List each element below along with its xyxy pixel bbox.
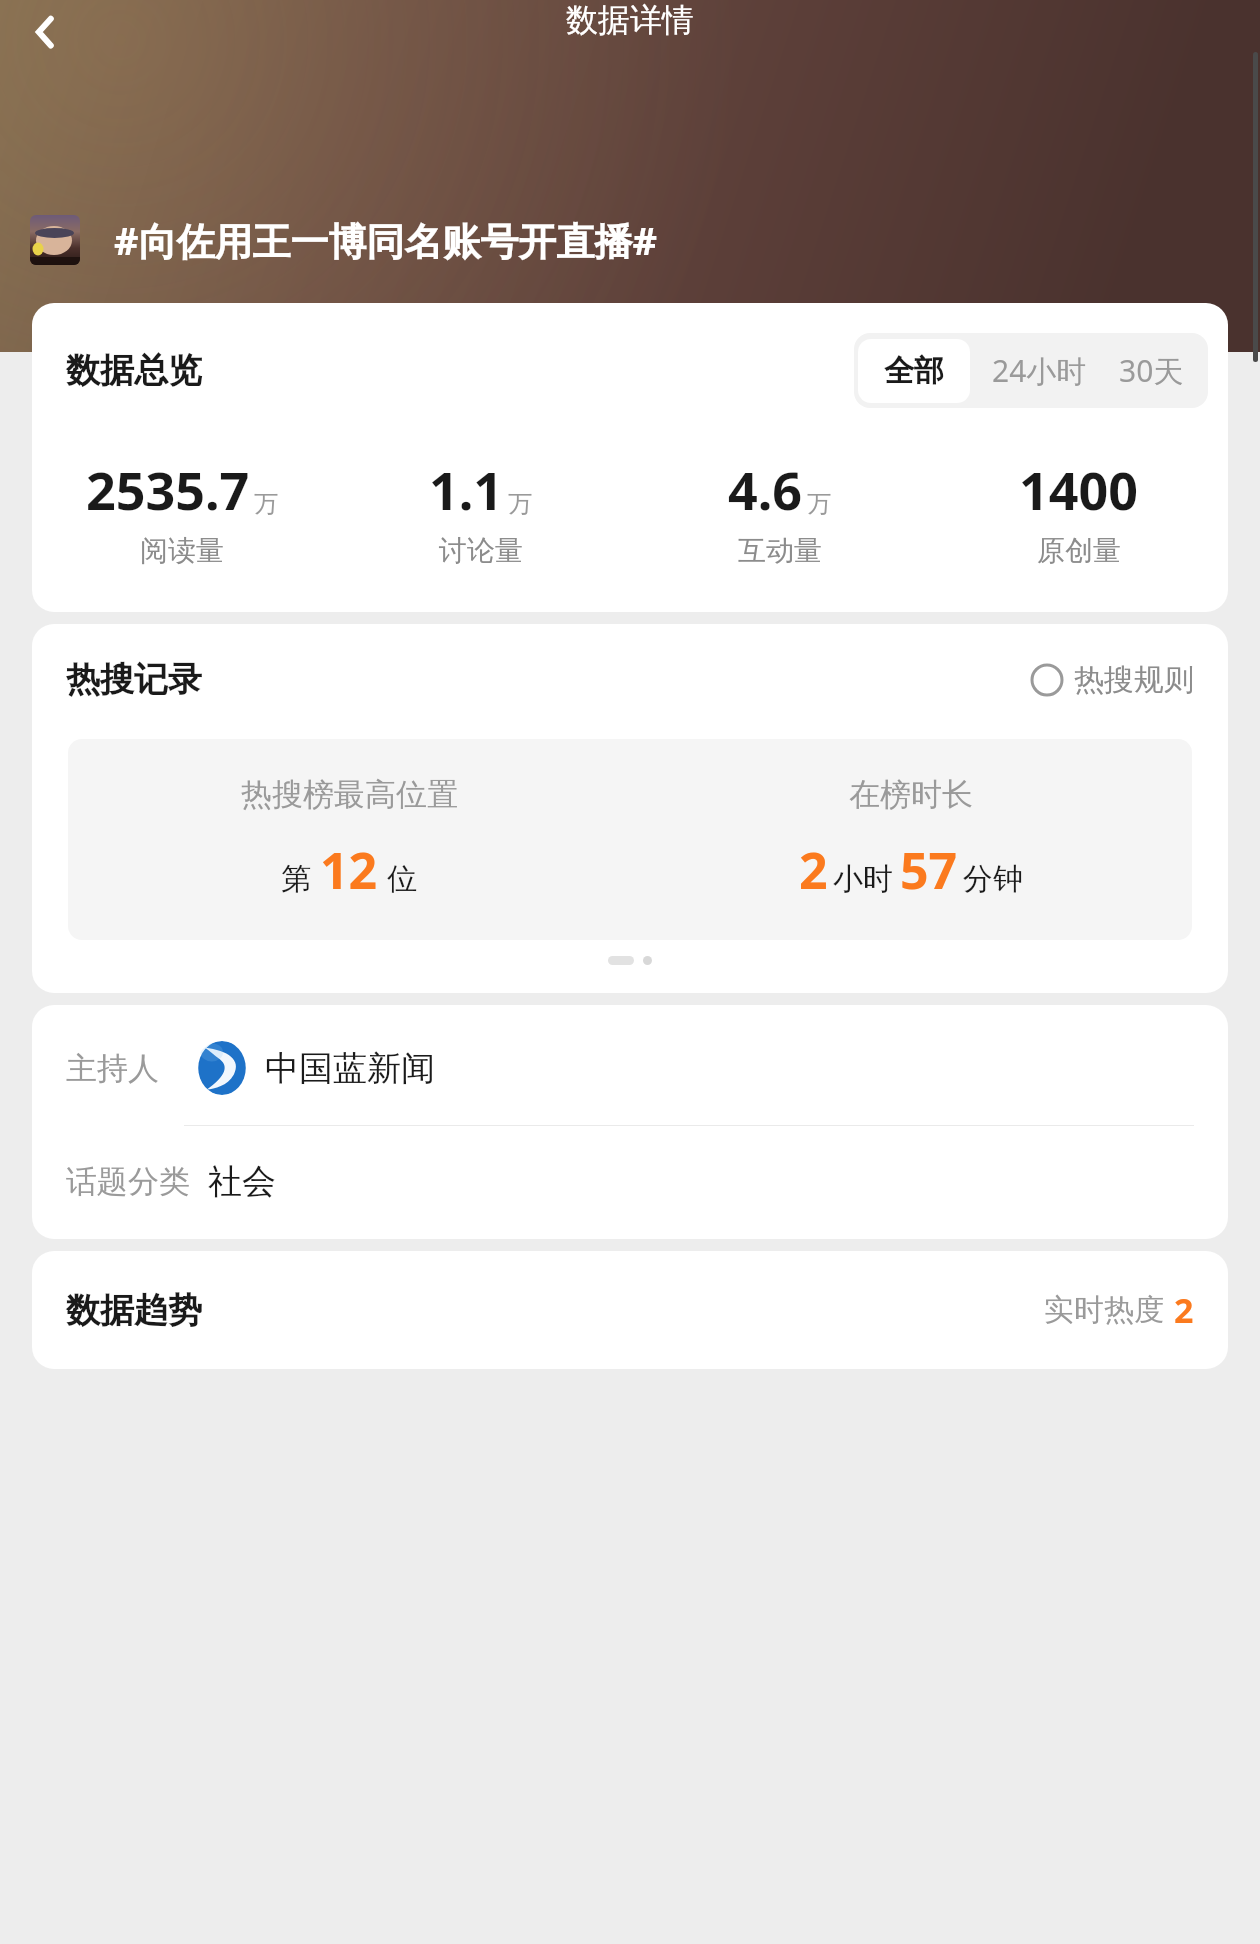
staticText: 数据详情 (566, 0, 694, 40)
button[interactable]: 热搜规则 (1030, 661, 1194, 699)
staticText: 热搜规则 (1074, 661, 1194, 699)
button[interactable]: 主持人 (66, 1041, 1194, 1095)
staticText: 万 (508, 489, 532, 519)
staticText: 1400 (1019, 454, 1138, 525)
button[interactable]: 全部 (858, 339, 970, 403)
staticText: 2535.7 (86, 454, 250, 525)
staticText: 2 (799, 836, 828, 904)
staticText: 数据趋势 (66, 1289, 202, 1332)
staticText: 57 (900, 836, 958, 904)
button[interactable]: 话题分类 (66, 1160, 1194, 1203)
button[interactable]: Topic thumbnail (30, 215, 80, 265)
staticText: 24小时 (992, 350, 1087, 391)
staticText: 第 (281, 860, 311, 898)
staticText: 12 (320, 836, 378, 904)
staticText: 阅读量 (140, 533, 224, 568)
staticText: 实时热度 (1044, 1291, 1164, 1329)
staticText: 万 (254, 489, 278, 519)
staticText: #向佐用王一博同名账号开直播# (114, 214, 658, 266)
staticText: 位 (387, 860, 417, 898)
staticText: 全部 (884, 352, 944, 390)
staticText: 互动量 (738, 533, 822, 568)
staticText: 30天 (1119, 350, 1184, 391)
staticText: 话题分类 (66, 1162, 190, 1201)
staticText: 小时 (833, 860, 893, 898)
staticText: 中国蓝新闻 (265, 1047, 435, 1090)
staticText: 热搜榜最高位置 (241, 775, 458, 814)
staticText: 4.6 (728, 454, 803, 525)
staticText: 热搜记录 (66, 658, 202, 701)
staticText: 主持人 (66, 1049, 159, 1088)
button[interactable]: Back (14, 0, 78, 64)
staticText: 数据总览 (66, 349, 202, 392)
staticText: 1.1 (429, 454, 504, 525)
staticText: 在榜时长 (849, 775, 973, 814)
staticText: 2 (1174, 1287, 1194, 1333)
button[interactable]: 24小时 (970, 337, 1109, 404)
staticText: 讨论量 (439, 533, 523, 568)
staticText: 原创量 (1037, 533, 1121, 568)
button[interactable]: 30天 (1109, 337, 1204, 404)
staticText: 社会 (208, 1160, 276, 1203)
staticText: 万 (807, 489, 831, 519)
staticText: 分钟 (963, 860, 1023, 898)
